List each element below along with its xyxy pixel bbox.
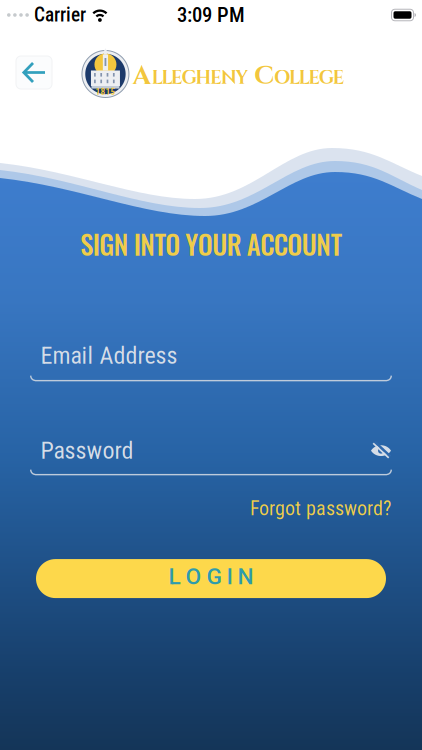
- staticText: Password: [40, 437, 133, 465]
- button[interactable]: Show password: [370, 443, 392, 459]
- staticText: 1815: [95, 86, 115, 97]
- button[interactable]: Back: [0, 30, 52, 89]
- staticText: Email Address: [40, 341, 177, 370]
- staticText: C: [248, 58, 274, 93]
- staticText: A: [132, 58, 151, 93]
- staticText: OLLEGE: [274, 66, 345, 91]
- button[interactable]: L O G I N: [36, 559, 386, 598]
- staticText: 3:09 PM: [177, 3, 245, 27]
- button[interactable]: Forgot password?: [250, 497, 391, 520]
- staticText: L O G I N: [168, 563, 253, 590]
- staticText: Carrier: [34, 4, 86, 26]
- staticText: LLEGHENY: [151, 66, 248, 91]
- staticText: SIGN INTO YOUR ACCOUNT: [80, 224, 342, 263]
- staticText: Forgot password?: [250, 497, 391, 520]
